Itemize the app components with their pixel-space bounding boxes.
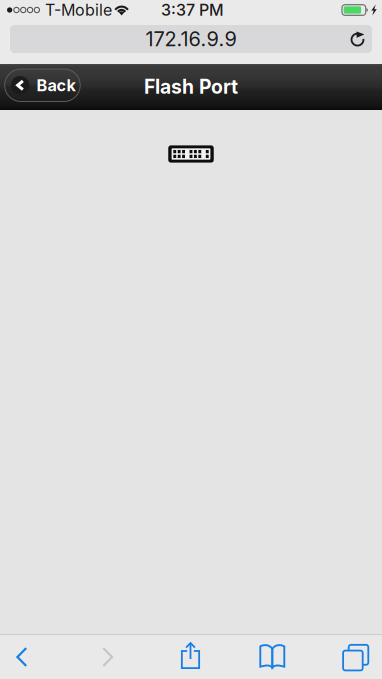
button[interactable]: Bookmarks <box>209 635 335 679</box>
staticText: 172.16.9.9 <box>145 27 236 51</box>
button[interactable]: Back <box>5 69 80 101</box>
button[interactable]: Tabs <box>335 635 370 679</box>
button[interactable]: Forward <box>44 635 172 679</box>
button[interactable]: Share <box>172 635 209 679</box>
button[interactable]: 172.16.9.9 <box>10 25 372 53</box>
staticText: 3:37 PM <box>161 0 224 20</box>
staticText: T-Mobile <box>45 0 112 20</box>
staticText: Back <box>36 75 75 95</box>
staticText: Flash Port <box>144 75 238 98</box>
button[interactable]: Back <box>0 635 44 679</box>
